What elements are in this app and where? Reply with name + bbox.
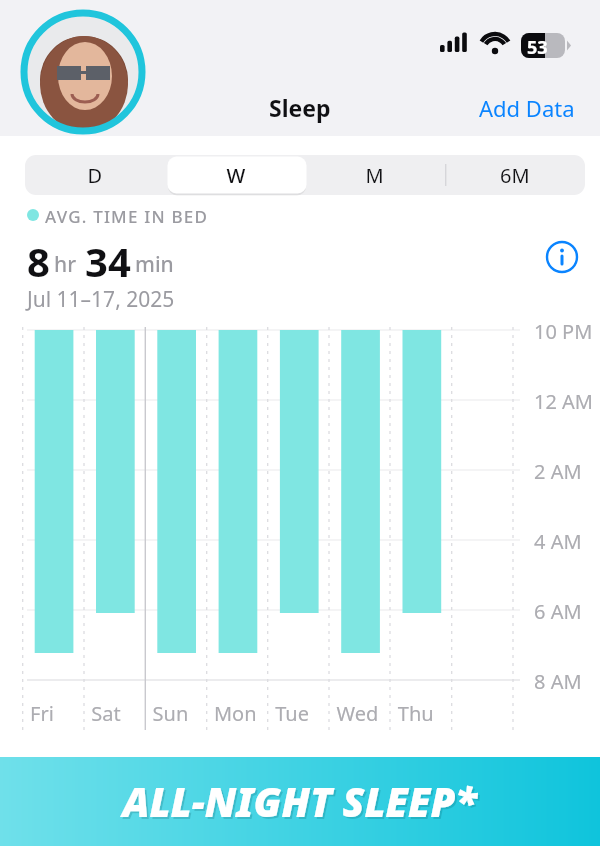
button[interactable]: Info about time in bed — [540, 235, 584, 279]
button[interactable] — [307, 155, 446, 195]
button[interactable] — [166, 155, 307, 195]
button[interactable]: Profile photo — [21, 10, 145, 134]
button[interactable] — [25, 155, 166, 195]
button[interactable] — [446, 155, 585, 195]
button[interactable] — [470, 84, 590, 130]
button[interactable] — [0, 757, 600, 846]
